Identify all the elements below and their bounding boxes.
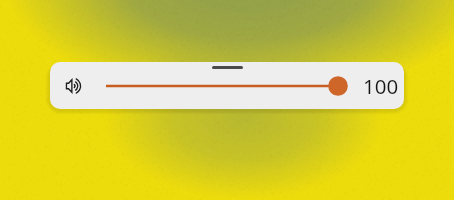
button[interactable]: Volume panel: [50, 62, 404, 109]
staticText: 100: [363, 72, 399, 96]
button[interactable]: Volume slider: [94, 74, 350, 98]
button[interactable]: Volume: [66, 79, 83, 93]
